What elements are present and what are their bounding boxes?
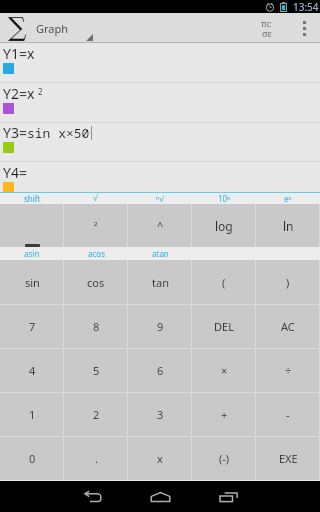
button[interactable]: Y1=x	[0, 43, 320, 83]
button[interactable]: Y2=x 2	[0, 83, 320, 123]
button[interactable]: Greek symbols	[245, 13, 288, 43]
button[interactable]: +	[192, 392, 256, 436]
staticText: 7	[29, 319, 36, 334]
staticText: x	[157, 451, 163, 466]
staticText: 4	[29, 363, 36, 378]
button[interactable]: ln	[256, 204, 320, 247]
staticText: (-)	[219, 451, 230, 466]
button[interactable]: tan	[128, 260, 192, 304]
staticText: 0	[29, 451, 36, 466]
button[interactable]: x	[128, 436, 192, 480]
button[interactable]: DEL	[192, 304, 256, 348]
button[interactable]: 5	[64, 348, 128, 392]
staticText: Y3=sin x×50	[3, 123, 90, 142]
button[interactable]: √	[64, 193, 128, 204]
button[interactable]: 2	[64, 392, 128, 436]
button[interactable]	[0, 204, 64, 247]
staticText: ÷	[285, 363, 292, 378]
staticText: (	[222, 275, 226, 290]
staticText: sin	[25, 275, 40, 290]
staticText: .	[95, 451, 98, 466]
staticText: eˣ	[284, 193, 292, 204]
button[interactable]: ⁿ√	[128, 193, 192, 204]
button[interactable]: cos	[64, 260, 128, 304]
button[interactable]: More options	[288, 13, 320, 43]
button[interactable]: -	[256, 392, 320, 436]
button[interactable]: sin	[0, 260, 64, 304]
staticText: asin	[24, 248, 40, 259]
button[interactable]: 9	[128, 304, 192, 348]
staticText: 9	[157, 319, 164, 334]
button[interactable]: 4	[0, 348, 64, 392]
staticText: ×	[221, 363, 228, 378]
staticText: ln	[283, 218, 294, 234]
staticText: atan	[152, 248, 169, 259]
button[interactable]: 8	[64, 304, 128, 348]
staticText: Graph	[36, 21, 69, 36]
staticText: πc	[261, 17, 272, 29]
staticText: AC	[281, 319, 295, 334]
button[interactable]: Home	[126, 481, 194, 512]
staticText: ∑	[8, 12, 27, 42]
button[interactable]: (	[192, 260, 256, 304]
staticText: ²	[94, 219, 98, 233]
staticText: Y4=	[3, 163, 27, 182]
staticText: 5	[93, 363, 100, 378]
staticText: cos	[87, 275, 105, 290]
staticText: Y1=x	[3, 44, 35, 63]
staticText: 13:54	[293, 0, 319, 13]
staticText: -	[286, 407, 290, 422]
staticText: 8	[93, 319, 100, 334]
button[interactable]: AC	[256, 304, 320, 348]
button[interactable]: )	[256, 260, 320, 304]
staticText: 3	[157, 407, 164, 422]
staticText: ⁿ√	[156, 193, 165, 204]
button[interactable]: Back	[58, 481, 126, 512]
button[interactable]: 10ⁿ	[192, 193, 256, 204]
button[interactable]: .	[64, 436, 128, 480]
button[interactable]: ∑	[0, 13, 100, 43]
staticText: 10ⁿ	[218, 193, 231, 204]
staticText: tan	[152, 275, 169, 290]
button[interactable]: ×	[192, 348, 256, 392]
staticText: DEL	[214, 319, 234, 334]
staticText: 1	[29, 407, 36, 422]
staticText: 2	[93, 407, 100, 422]
button[interactable]: log	[192, 204, 256, 247]
button[interactable]: atan	[128, 247, 192, 260]
button[interactable]: asin	[0, 247, 64, 260]
staticText: log	[215, 218, 233, 234]
button[interactable]: acos	[64, 247, 128, 260]
button[interactable]: eˣ	[256, 193, 320, 204]
button[interactable]: ÷	[256, 348, 320, 392]
button[interactable]: 6	[128, 348, 192, 392]
button[interactable]: 7	[0, 304, 64, 348]
staticText: √	[93, 194, 99, 203]
button[interactable]: shift	[0, 193, 64, 204]
button[interactable]: Y3=sin x×50	[0, 122, 320, 162]
button[interactable]: EXE	[256, 436, 320, 480]
staticText: +	[221, 407, 228, 422]
staticText: ^	[157, 218, 164, 233]
button[interactable]: 3	[128, 392, 192, 436]
button[interactable]: 1	[0, 392, 64, 436]
staticText: Y2=x 2	[3, 84, 43, 103]
button[interactable]: Recent apps	[194, 481, 262, 512]
staticText: EXE	[279, 451, 298, 466]
button[interactable]: ²	[64, 204, 128, 247]
staticText: shift	[24, 193, 41, 204]
staticText: acos	[88, 248, 105, 259]
button[interactable]: ^	[128, 204, 192, 247]
staticText: 6	[157, 363, 164, 378]
button[interactable]: (-)	[192, 436, 256, 480]
button[interactable]: 0	[0, 436, 64, 480]
button[interactable]: Y4=	[0, 162, 320, 202]
staticText: σε	[262, 27, 272, 39]
staticText: )	[286, 275, 290, 290]
